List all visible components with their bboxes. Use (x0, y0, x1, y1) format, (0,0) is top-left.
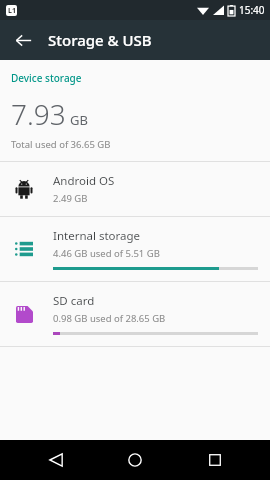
staticText: 15:40 (239, 3, 265, 17)
staticText: Device storage (11, 71, 82, 85)
staticText: GB (70, 111, 88, 129)
staticText: Storage & USB (48, 30, 152, 50)
staticText: 4.46 GB used of 5.51 GB (53, 247, 160, 260)
staticText: 0.98 GB used of 28.65 GB (53, 312, 166, 325)
button[interactable]: Back (6, 23, 40, 57)
button[interactable]: Internal storage (0, 217, 270, 281)
staticText: L1 (8, 6, 16, 16)
button[interactable]: SD card (0, 282, 270, 346)
button[interactable]: Home (111, 440, 159, 480)
staticText: SD card (53, 293, 95, 309)
button[interactable]: Recent apps (191, 440, 239, 480)
staticText: 2.49 GB (53, 192, 88, 205)
button[interactable]: Back (32, 440, 80, 480)
staticText: 7.93 (11, 95, 66, 133)
staticText: Internal storage (53, 228, 141, 244)
staticText: Total used of 36.65 GB (11, 138, 111, 151)
staticText: Android OS (53, 173, 115, 189)
button[interactable]: Android OS (0, 162, 270, 216)
